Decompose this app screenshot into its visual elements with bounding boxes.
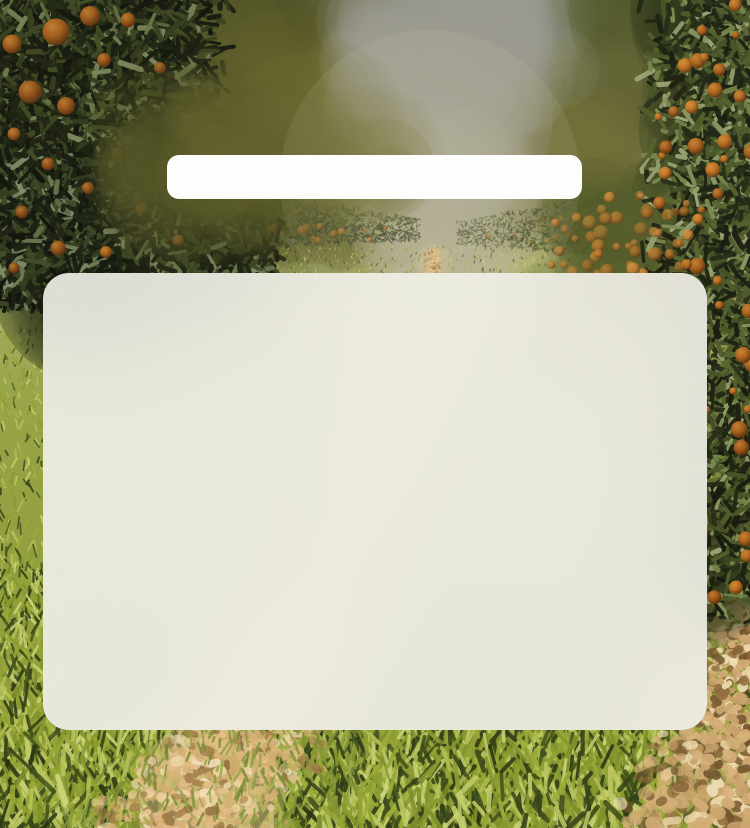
button[interactable] bbox=[167, 155, 582, 199]
